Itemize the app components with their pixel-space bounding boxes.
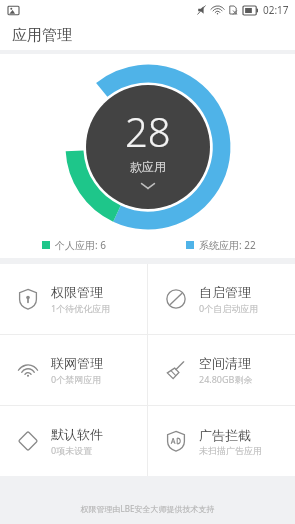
staticText: 广告拦截 — [199, 427, 251, 443]
staticText: 应用管理 — [12, 26, 72, 45]
staticText: 02:17 — [263, 3, 289, 17]
staticText: 1个待优化应用 — [51, 302, 111, 314]
staticText: 28 — [125, 104, 171, 158]
staticText: 默认软件 — [51, 426, 103, 442]
button[interactable]: 自启管理 — [148, 264, 295, 334]
button[interactable]: 空间清理 — [148, 335, 295, 405]
staticText: 0个禁网应用 — [51, 373, 102, 385]
button[interactable]: 广告拦截 — [148, 406, 295, 476]
staticText: 自启管理 — [199, 284, 251, 300]
staticText: 空间清理 — [199, 355, 251, 371]
button[interactable]: 权限管理 — [0, 264, 147, 334]
staticText: 0项未设置 — [51, 444, 93, 456]
staticText: 系统应用: 22 — [199, 238, 256, 252]
button[interactable]: 默认软件 — [0, 406, 147, 476]
staticText: 权限管理 — [51, 284, 103, 300]
staticText: 联网管理 — [51, 355, 103, 371]
button[interactable]: 联网管理 — [0, 335, 147, 405]
staticText: 款应用 — [130, 159, 166, 174]
staticText: 0个自启动应用 — [199, 302, 259, 314]
staticText: 权限管理由LBE安全大师提供技术支持 — [0, 503, 295, 514]
staticText: 未扫描广告应用 — [199, 445, 262, 456]
button[interactable]: 28 — [86, 85, 210, 209]
staticText: 24.80GB剩余 — [199, 373, 253, 385]
staticText: 个人应用: 6 — [55, 238, 106, 252]
